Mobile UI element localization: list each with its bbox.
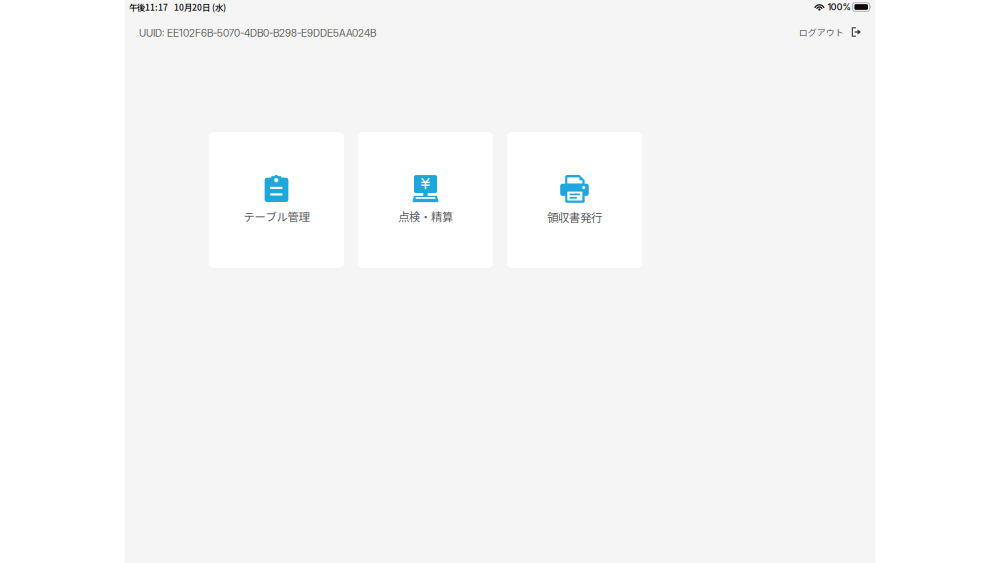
staticText: UUID: EE102F6B-5070-4DB0-B298-E9DDE5AA02…	[139, 27, 376, 39]
button[interactable]: 領収書発行	[507, 132, 642, 268]
staticText: テーブル管理	[243, 208, 309, 224]
button[interactable]: 点検・精算	[358, 132, 493, 268]
staticText: 点検・精算	[398, 208, 453, 224]
staticText: 領収書発行	[547, 209, 602, 225]
button[interactable]: テーブル管理	[209, 132, 344, 268]
staticText: 100%	[828, 2, 851, 12]
staticText: 午後11:17 10月20日 (水)	[129, 1, 226, 13]
staticText: ログアウト	[799, 25, 844, 38]
button[interactable]: ログアウト	[799, 26, 861, 39]
